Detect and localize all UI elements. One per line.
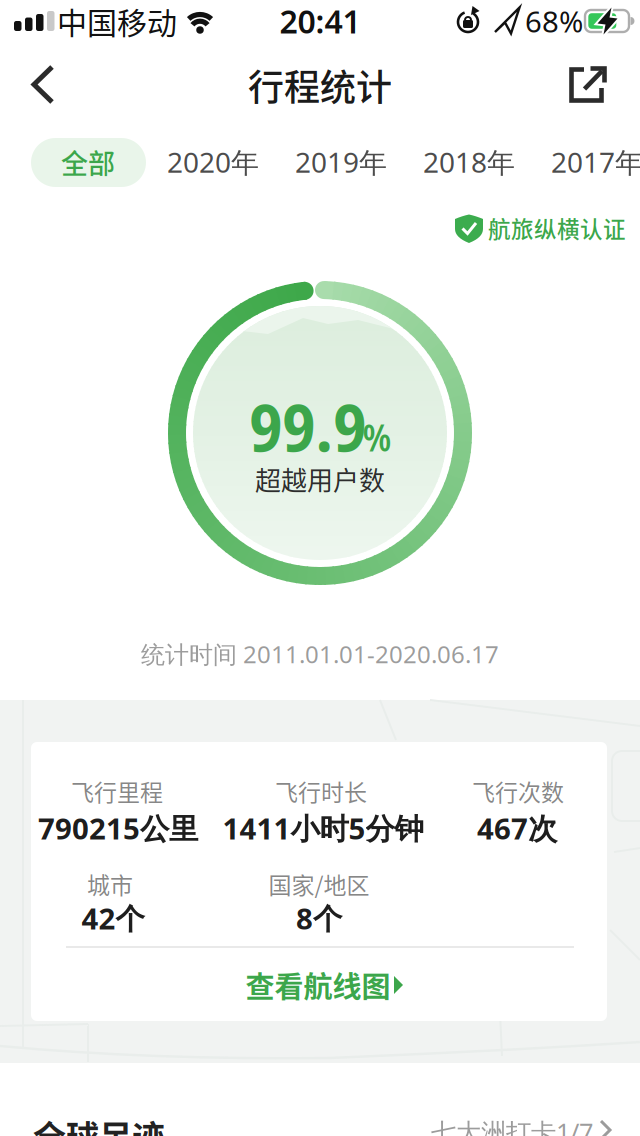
staticText: 42个 — [81, 898, 144, 937]
staticText: 2020年 — [167, 143, 259, 181]
staticText: 国家/地区 — [268, 867, 369, 901]
staticText: 城市 — [87, 867, 133, 901]
staticText: 七大洲打卡1/7 — [431, 1115, 593, 1136]
staticText: 8个 — [296, 898, 342, 937]
staticText: 飞行次数 — [472, 774, 564, 808]
staticText: 790215公里 — [38, 808, 198, 847]
staticText: 68% — [525, 1, 583, 40]
staticText: 1411小时5分钟 — [222, 808, 423, 847]
staticText: 查看航线图 — [245, 964, 390, 1006]
staticText: 航旅纵横认证 — [488, 212, 626, 244]
staticText: 飞行时长 — [275, 774, 367, 808]
staticText: 2018年 — [423, 143, 515, 181]
staticText: 99.9 — [249, 381, 366, 471]
staticText: 全部 — [61, 142, 115, 182]
staticText: 全球足迹 — [33, 1111, 165, 1136]
staticText: % — [362, 412, 391, 462]
staticText: 行程统计 — [248, 59, 392, 111]
staticText: 统计时间 2011.01.01-2020.06.17 — [141, 638, 499, 670]
staticText: 飞行里程 — [71, 774, 163, 808]
staticText: 2019年 — [295, 143, 387, 181]
staticText: 467次 — [477, 808, 557, 847]
staticText: 超越用户数 — [255, 460, 385, 498]
staticText: 2017年 — [551, 143, 640, 181]
staticText: 中国移动 — [57, 0, 177, 43]
staticText: 20:41 — [279, 0, 360, 42]
